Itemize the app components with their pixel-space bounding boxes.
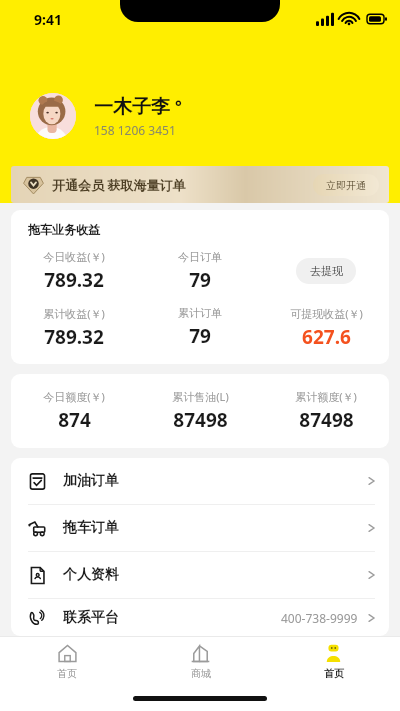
staticText: 627.6 xyxy=(302,324,351,350)
staticText: 今日收益(￥) xyxy=(43,249,105,264)
button[interactable]: 开通会员 获取海量订单 xyxy=(11,166,389,203)
button[interactable]: 联系平台 xyxy=(11,599,389,636)
staticText: 累计额度(￥) xyxy=(295,389,357,404)
staticText: 开通会员 获取海量订单 xyxy=(52,176,186,194)
button[interactable]: 商城 xyxy=(134,637,267,685)
staticText: 79 xyxy=(189,323,211,349)
staticText: 可提现收益(￥) xyxy=(290,306,363,321)
staticText: 今日额度(￥) xyxy=(43,389,105,404)
staticText: 400-738-9999 xyxy=(281,610,358,626)
staticText: 商城 xyxy=(191,667,211,680)
button[interactable]: 拖车订单 xyxy=(11,505,389,551)
staticText: 拖车业务收益 xyxy=(28,222,100,237)
staticText: 789.32 xyxy=(44,267,104,293)
staticText: 联系平台 xyxy=(63,609,119,627)
staticText: 一木子李 xyxy=(94,95,170,119)
staticText: 拖车订单 xyxy=(63,519,119,537)
button[interactable]: 立即开通 xyxy=(313,174,379,196)
staticText: 87498 xyxy=(299,407,354,433)
button[interactable]: 首页 xyxy=(0,637,134,685)
button[interactable]: 首页 xyxy=(267,637,400,685)
button[interactable]: 个人资料 xyxy=(11,552,389,598)
staticText: 去提现 xyxy=(310,264,343,278)
staticText: 79 xyxy=(189,267,211,293)
staticText: 87498 xyxy=(173,407,228,433)
staticText: 个人资料 xyxy=(63,566,119,584)
staticText: ° xyxy=(175,95,182,117)
button[interactable]: 去提现 xyxy=(296,258,356,284)
staticText: 9:41 xyxy=(34,10,62,29)
staticText: 首页 xyxy=(324,667,344,680)
staticText: 789.32 xyxy=(44,324,104,350)
staticText: 加油订单 xyxy=(63,472,119,490)
staticText: 今日订单 xyxy=(178,250,222,264)
staticText: 累计收益(￥) xyxy=(43,306,105,321)
staticText: 874 xyxy=(58,407,91,433)
staticText: 累计售油(L) xyxy=(172,389,229,404)
staticText: 累计订单 xyxy=(178,306,222,320)
button[interactable]: 加油订单 xyxy=(11,458,389,504)
button[interactable]: Profile photo xyxy=(30,93,76,139)
staticText: 立即开通 xyxy=(326,179,366,192)
staticText: 158 1206 3451 xyxy=(94,122,176,138)
staticText: 首页 xyxy=(57,667,77,680)
